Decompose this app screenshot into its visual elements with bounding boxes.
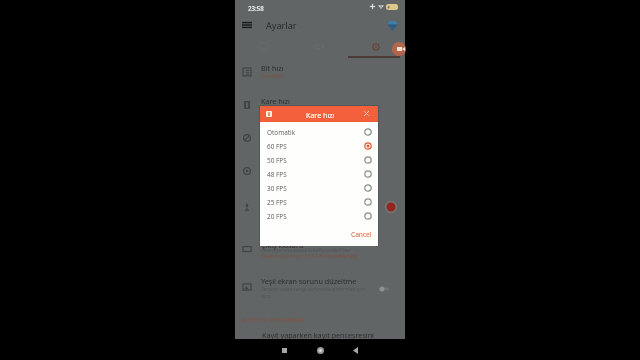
- button[interactable]: Home: [310, 340, 330, 360]
- button[interactable]: Close: [361, 108, 372, 119]
- staticText: 60 FPS: [267, 142, 287, 151]
- button[interactable]: 30 FPS: [260, 181, 378, 195]
- button[interactable]: Stop recording: [384, 200, 398, 214]
- staticText: Cancel: [351, 230, 372, 239]
- staticText: Yönlendirme: [261, 129, 304, 139]
- button[interactable]: Bit hızı: [235, 59, 405, 89]
- staticText: Bit hızı: [261, 63, 284, 73]
- button[interactable]: Back: [345, 340, 365, 360]
- staticText: Yeşil ekran sorunu düzeltme: [261, 276, 357, 286]
- staticText: 48 FPS: [267, 170, 287, 179]
- staticText: Kare hızı: [261, 96, 290, 106]
- button[interactable]: Kare hızı: [235, 89, 405, 119]
- button[interactable]: Video kalitesi: [235, 157, 405, 189]
- staticText: Ses kaydet: [261, 198, 297, 208]
- button[interactable]: 25 FPS: [260, 195, 378, 209]
- button[interactable]: 50 FPS: [260, 153, 378, 167]
- button[interactable]: Record: [392, 42, 406, 56]
- button[interactable]: 60 FPS: [260, 139, 378, 153]
- staticText: Ayarlar: [266, 19, 297, 31]
- staticText: KONTROL SEÇENEKLERİ: [242, 316, 305, 323]
- staticText: Çıkış klasörü: [261, 240, 304, 250]
- button[interactable]: Settings: [356, 38, 396, 59]
- button[interactable]: Otomatik: [260, 125, 378, 139]
- button[interactable]: Recents: [274, 340, 294, 360]
- button[interactable]: Çıkış klasörü: [235, 228, 405, 263]
- staticText: 60 FPS: [261, 106, 277, 113]
- staticText: Video kalitesi: [261, 162, 306, 172]
- staticText: 25 FPS: [267, 198, 287, 207]
- staticText: 20 FPS: [267, 212, 287, 221]
- button[interactable]: Cancel: [349, 228, 374, 241]
- button[interactable]: Premium: [381, 14, 403, 36]
- button[interactable]: KONTROL SEÇENEKLERİ: [242, 316, 305, 323]
- button[interactable]: Toggle: [376, 281, 392, 297]
- button[interactable]: Menu: [236, 14, 258, 36]
- staticText: /storage/emulated/0/AzRecorderFree: [261, 247, 351, 254]
- button[interactable]: Yeşil ekran sorunu düzeltme: [235, 268, 405, 306]
- staticText: Kayıt yaparken kayıt pencesresini: [262, 330, 374, 340]
- staticText: Takılı depolama (12.04 GB kaydedilebilir…: [261, 253, 358, 260]
- staticText: Kare hızı: [306, 110, 335, 120]
- staticText: 30 FPS: [267, 184, 287, 193]
- staticText: 23:58: [248, 4, 264, 12]
- staticText: Otomatik: [267, 128, 296, 137]
- button[interactable]: 20 FPS: [260, 209, 378, 223]
- staticText: Otomatik: [261, 140, 284, 147]
- staticText: 50 FPS: [267, 156, 287, 165]
- button[interactable]: 48 FPS: [260, 167, 378, 181]
- staticText: Tersine video rengi sorununu gidermek iç…: [261, 286, 365, 293]
- staticText: Otomatik: [261, 73, 284, 80]
- staticText: Otomatik: [261, 173, 284, 180]
- button[interactable]: Ayarlar: [266, 19, 297, 31]
- staticText: açın: [261, 293, 271, 300]
- staticText: Mikrofon: [261, 208, 283, 215]
- button[interactable]: Yönlendirme: [235, 124, 405, 157]
- button[interactable]: Ses kaydet: [235, 192, 405, 224]
- button[interactable]: Kayıt yaparken kayıt pencesresini: [235, 328, 405, 348]
